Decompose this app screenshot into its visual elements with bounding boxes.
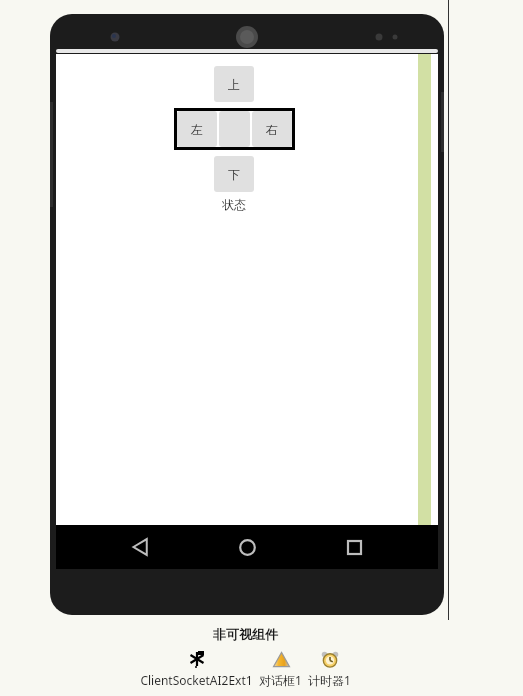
staticText: 非可视组件: [213, 626, 278, 642]
button[interactable]: Home: [225, 525, 269, 569]
button[interactable]: 下: [214, 156, 254, 192]
staticText: ClientSocketAI2Ext1: [140, 672, 253, 688]
button[interactable]: ClientSocketAI2Ext1: [140, 648, 253, 688]
staticText: 计时器1: [308, 672, 351, 688]
button[interactable]: 计时器1: [308, 648, 351, 688]
button[interactable]: 上: [214, 66, 254, 102]
staticText: 上: [228, 77, 240, 92]
button[interactable]: 左: [177, 111, 217, 147]
staticText: 对话框1: [259, 672, 302, 688]
staticText: 状态: [222, 197, 246, 212]
staticText: 右: [266, 122, 278, 137]
staticText: 左: [191, 122, 203, 137]
button[interactable]: 对话框1: [259, 648, 302, 688]
staticText: 下: [228, 167, 240, 182]
button[interactable]: 右: [252, 111, 292, 147]
button[interactable]: Back: [119, 525, 163, 569]
button[interactable]: Recent apps: [332, 525, 376, 569]
